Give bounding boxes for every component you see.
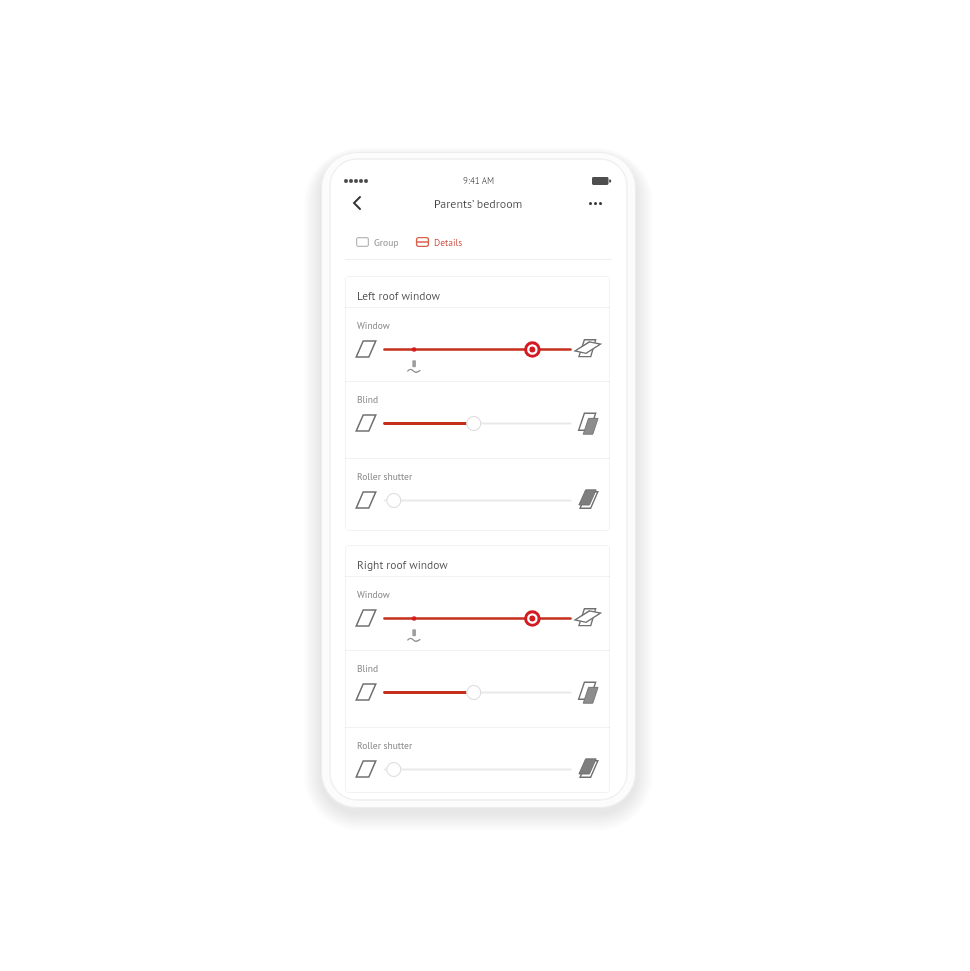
button[interactable]: Back (343, 191, 371, 215)
staticText: Roller shutter (357, 739, 413, 751)
staticText: Window (357, 319, 390, 331)
staticText: Blind (357, 393, 379, 405)
button[interactable]: Blind (345, 651, 610, 728)
button[interactable]: Window (345, 577, 610, 650)
staticText: 9:41 AM (463, 175, 495, 187)
button[interactable]: Details (416, 233, 463, 251)
staticText: Group (374, 236, 399, 248)
button[interactable]: Roller shutter (345, 728, 610, 793)
button[interactable]: Roller shutter (345, 459, 610, 531)
button[interactable]: More options (584, 192, 610, 215)
staticText: Right roof window (357, 557, 448, 572)
staticText: Parents’ bedroom (434, 196, 523, 212)
staticText: Blind (357, 662, 379, 674)
button[interactable]: Group (356, 233, 399, 251)
staticText: Roller shutter (357, 470, 413, 482)
staticText: Details (434, 236, 463, 248)
staticText: Left roof window (357, 288, 440, 303)
button[interactable]: Blind (345, 382, 610, 459)
staticText: Window (357, 588, 390, 600)
button[interactable]: Window (345, 308, 610, 381)
